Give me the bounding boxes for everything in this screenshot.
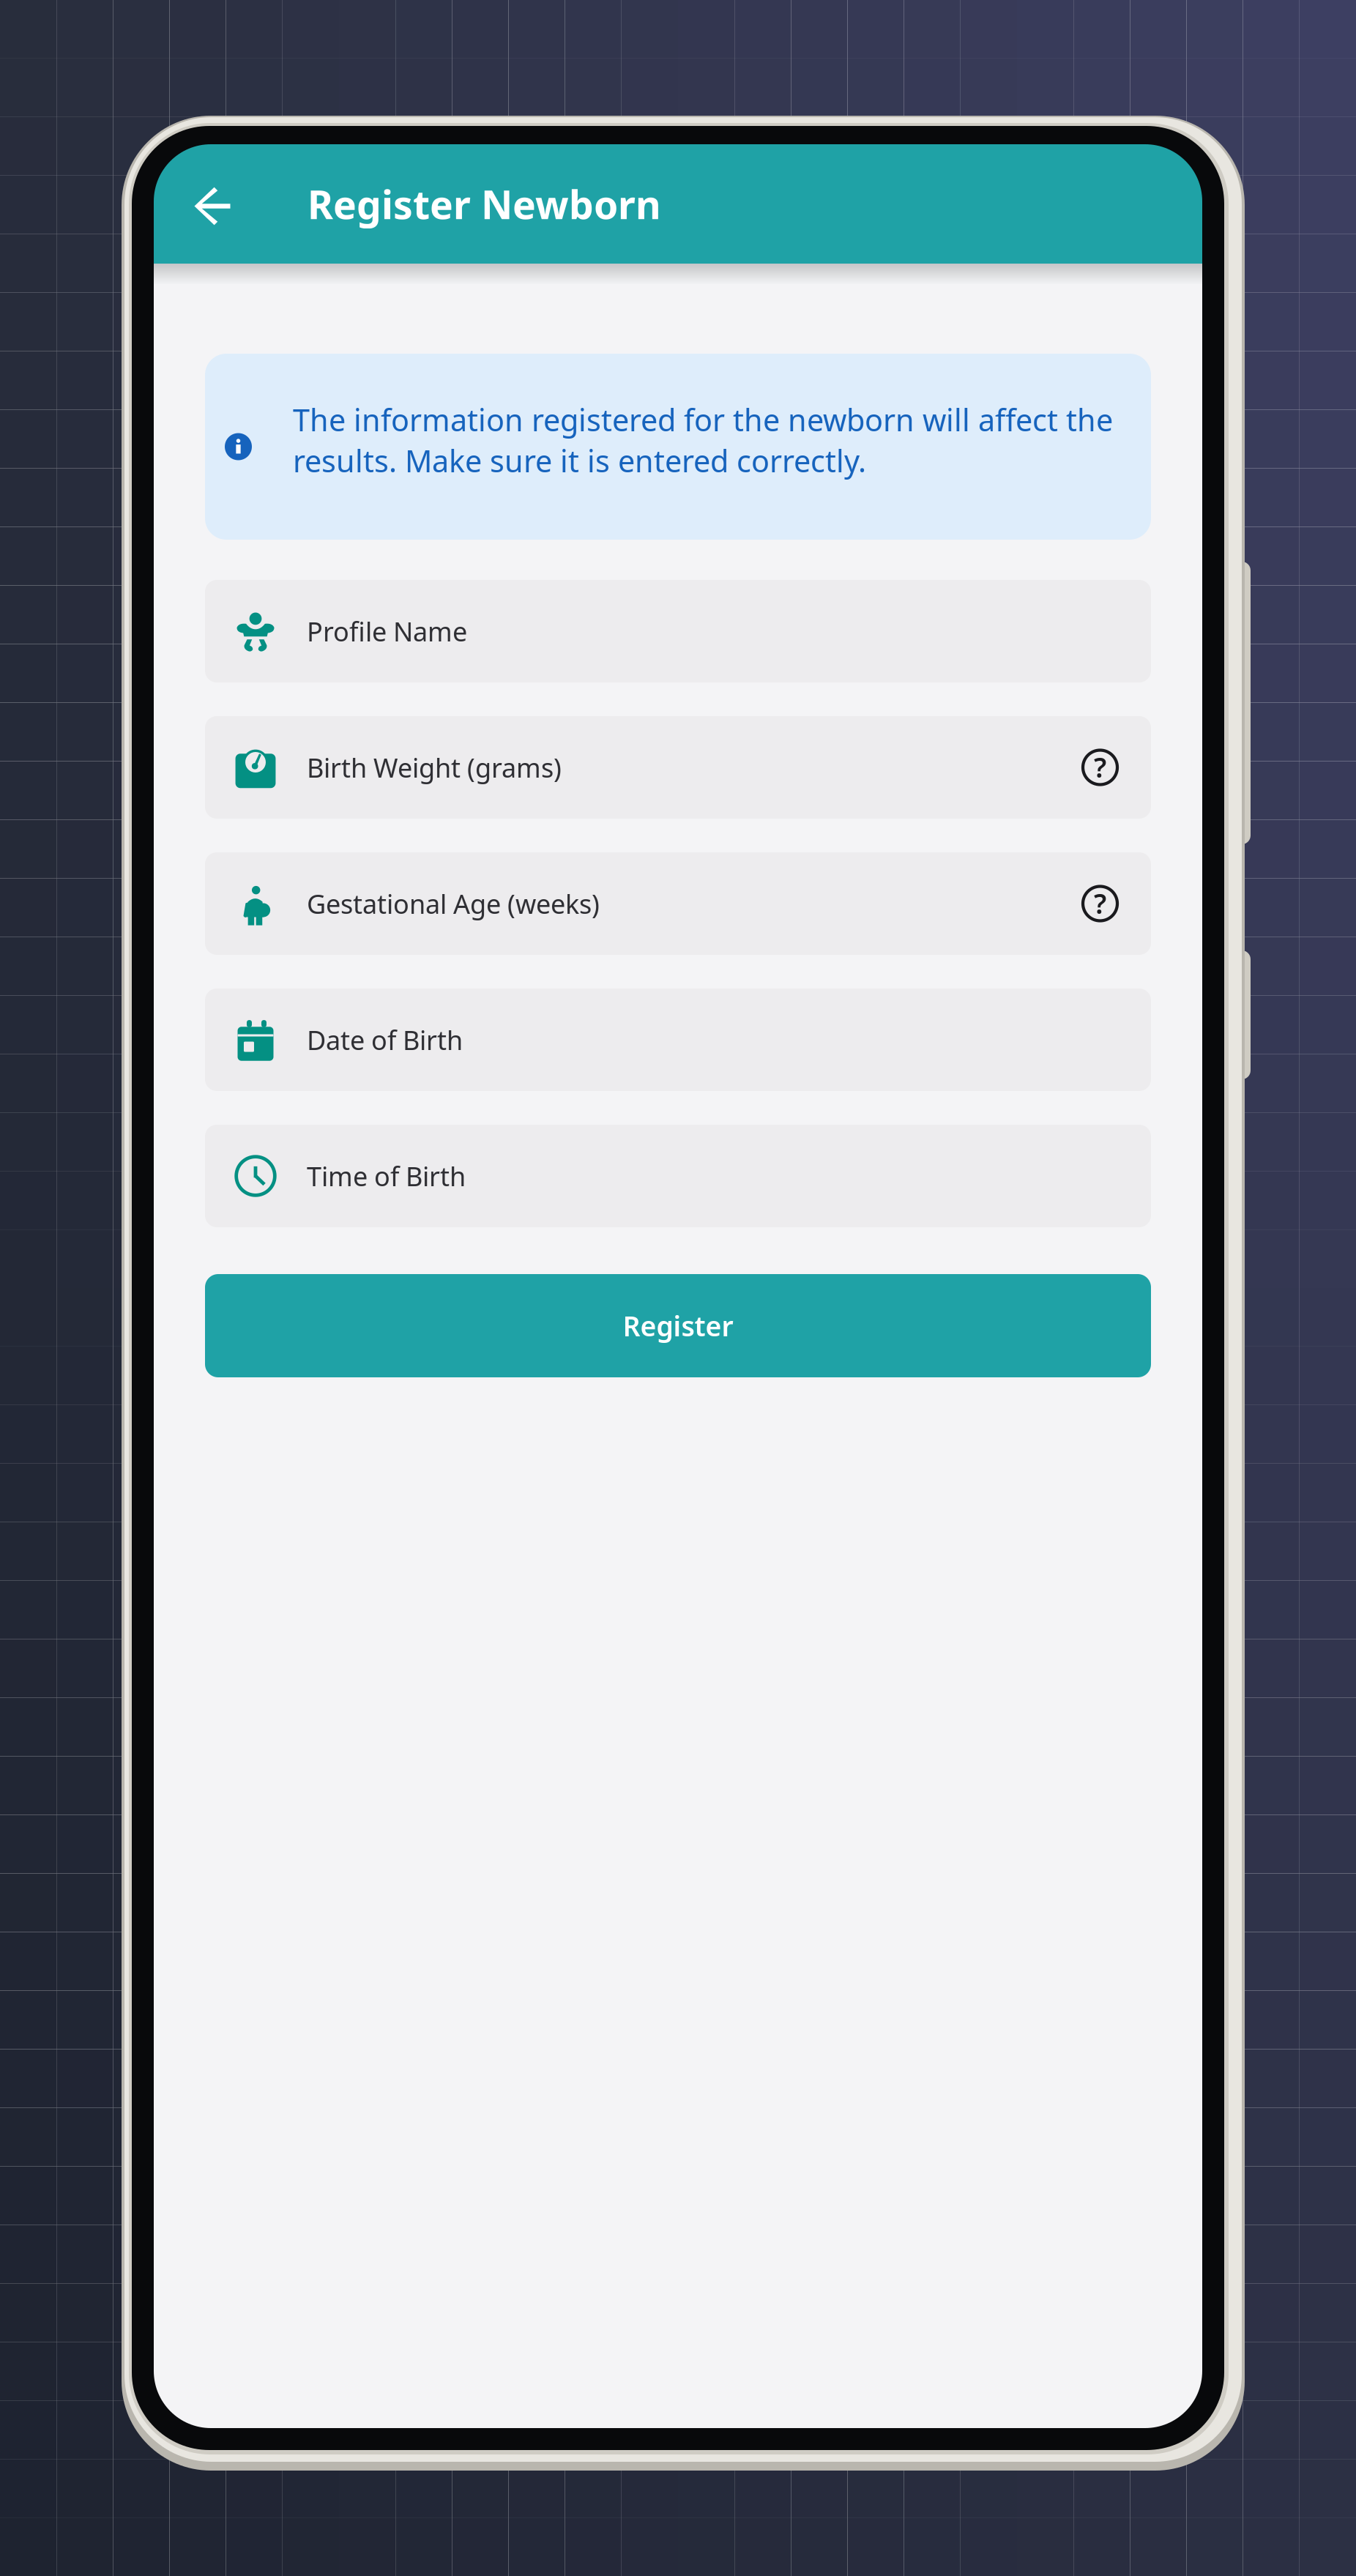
staticText: Profile Name (307, 614, 467, 649)
staticText: The information registered for the newbo… (293, 400, 1113, 481)
staticText: Gestational Age (weeks) (307, 886, 600, 921)
staticText: ? (1094, 749, 1106, 785)
staticText: Date of Birth (307, 1022, 463, 1057)
button[interactable]: Back (174, 166, 250, 242)
staticText: Birth Weight (grams) (307, 750, 562, 785)
button[interactable]: Time of Birth (205, 1125, 1151, 1227)
staticText: Register Newborn (308, 178, 661, 230)
button[interactable]: Register (205, 1274, 1151, 1377)
button[interactable]: Help about Birth Weight (grams) (1083, 750, 1117, 785)
button[interactable]: Birth Weight (grams) (205, 716, 1151, 819)
button[interactable]: Profile Name (205, 580, 1151, 682)
staticText: Time of Birth (307, 1158, 466, 1193)
staticText: Register (623, 1308, 733, 1344)
staticText: ? (1094, 885, 1106, 921)
button[interactable]: Date of Birth (205, 989, 1151, 1091)
button[interactable]: Help about Gestational Age (weeks) (1083, 886, 1117, 921)
button[interactable]: Gestational Age (weeks) (205, 852, 1151, 955)
